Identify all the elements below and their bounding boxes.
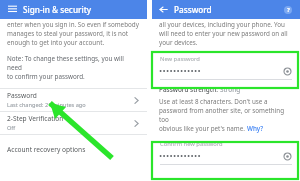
staticText: enter when you sign in. So even if someb… [7,20,139,47]
staticText: Last changed: 21 minutes ago [7,101,86,109]
button[interactable]: Navigate back [157,3,170,16]
staticText: Use at least 8 characters. Don't use a [159,97,268,106]
staticText: password from another site, or something… [159,106,294,124]
button[interactable]: Account recovery options [0,140,147,158]
staticText: Why? [247,124,264,133]
staticText: Password [174,4,212,15]
button[interactable]: Confirm new password [152,140,300,165]
staticText: Password strength: [159,85,220,94]
staticText: Password [7,91,37,100]
button[interactable]: New password [152,55,300,80]
button[interactable]: Password [0,89,147,111]
staticText: ? [287,6,290,14]
staticText: Strong [220,85,241,94]
staticText: New password [160,55,200,63]
staticText: 2-Step Verification [7,114,64,123]
staticText: Confirm new password [160,140,223,148]
button[interactable]: Show password [282,66,292,76]
staticText: obvious like your pet's name. [159,124,247,133]
staticText: Sign-in & security [23,4,92,15]
button[interactable]: Show password [282,151,292,161]
staticText: all your devices, including your phone. … [159,20,288,47]
staticText: Off [7,124,16,132]
button[interactable]: Help [281,3,294,16]
staticText: Note: To change these settings, you will… [7,54,140,81]
staticText: Account recovery options [7,145,86,154]
button[interactable]: Open navigation menu [6,3,19,16]
button[interactable]: 2-Step Verification [0,112,147,134]
